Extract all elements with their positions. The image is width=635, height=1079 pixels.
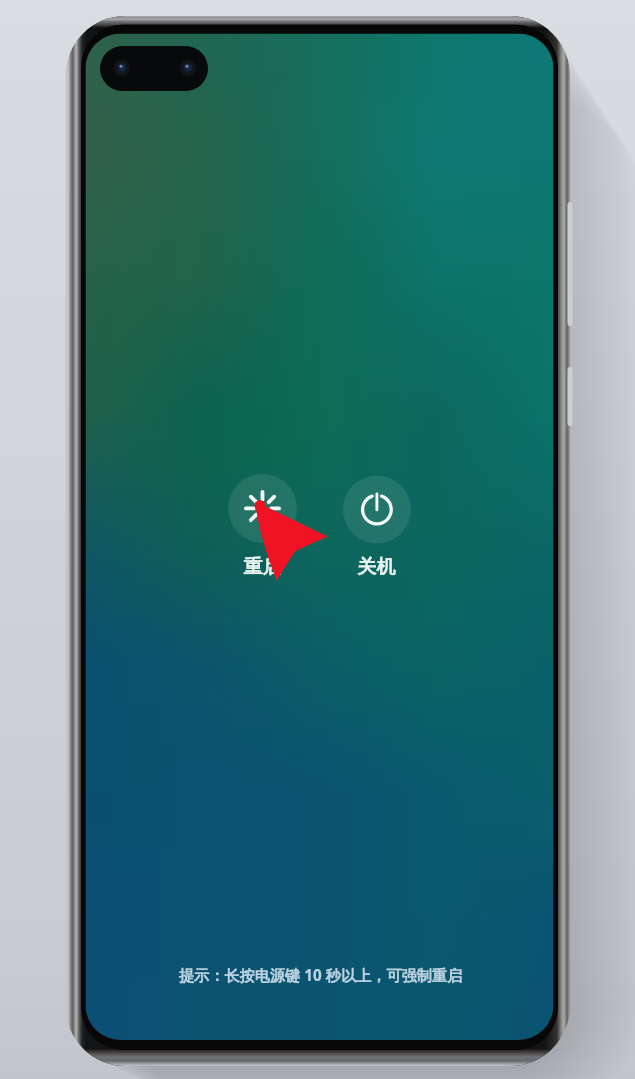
staticText: 关机 [336,555,417,583]
staticText: 提示：长按电源键 10 秒以上，可强制重启 [120,965,521,991]
button[interactable]: 关机 Power off [337,471,419,581]
button[interactable]: 重启 Restart [222,471,304,581]
staticText: 重启 [222,555,303,583]
